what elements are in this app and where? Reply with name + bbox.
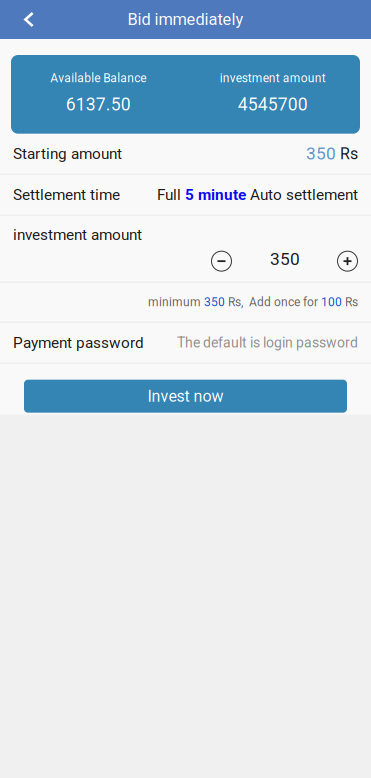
staticText: The default is login password bbox=[177, 334, 358, 351]
button[interactable]: Increase amount bbox=[337, 251, 358, 272]
staticText: Rs bbox=[342, 295, 358, 309]
button[interactable]: Decrease amount bbox=[211, 251, 232, 272]
staticText: Bid immediately bbox=[127, 10, 243, 29]
staticText: Rs bbox=[336, 144, 358, 163]
staticText: 350 bbox=[204, 295, 225, 309]
staticText: 5 minute bbox=[185, 186, 246, 204]
staticText: 6137.50 bbox=[66, 94, 131, 115]
staticText: Payment password bbox=[13, 334, 144, 352]
button[interactable]: Invest now bbox=[24, 380, 347, 413]
staticText: Add once for bbox=[243, 295, 321, 309]
staticText: 100 bbox=[321, 295, 342, 309]
staticText: Full bbox=[157, 186, 185, 204]
staticText: Available Balance bbox=[50, 71, 146, 85]
staticText: investment amount bbox=[220, 71, 326, 85]
staticText: Invest now bbox=[147, 387, 223, 406]
staticText: Starting amount bbox=[13, 145, 122, 163]
staticText: 350 bbox=[306, 143, 336, 164]
button[interactable]: Back bbox=[0, 0, 58, 39]
staticText: 350 bbox=[270, 249, 300, 269]
staticText: investment amount bbox=[13, 226, 142, 244]
staticText: Settlement time bbox=[13, 186, 120, 204]
staticText: 4545700 bbox=[238, 94, 308, 115]
staticText: minimum bbox=[148, 295, 204, 309]
staticText: Auto settlement bbox=[246, 186, 358, 204]
staticText: Rs, bbox=[225, 295, 243, 309]
